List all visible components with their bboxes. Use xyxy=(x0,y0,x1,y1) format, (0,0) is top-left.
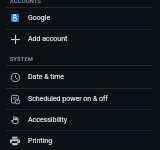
staticText: ACCOUNTS xyxy=(10,0,42,4)
button[interactable]: Add account xyxy=(0,30,160,48)
staticText: SYSTEM xyxy=(10,56,34,62)
button[interactable]: Scheduled power on & off xyxy=(0,89,160,109)
button[interactable]: Printing xyxy=(0,131,160,150)
staticText: Date & time xyxy=(28,73,65,81)
button[interactable]: Date & time xyxy=(0,66,160,88)
button[interactable]: Accessibility xyxy=(0,110,160,130)
staticText: Accessibility xyxy=(28,116,68,124)
staticText: Add account xyxy=(28,35,68,43)
staticText: Printing xyxy=(28,137,53,145)
staticText: Google xyxy=(28,14,51,22)
staticText: Scheduled power on & off xyxy=(28,95,108,103)
button[interactable]: Google xyxy=(0,7,160,29)
